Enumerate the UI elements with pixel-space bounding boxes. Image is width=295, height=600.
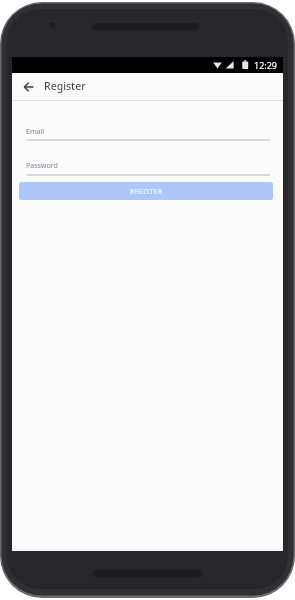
staticText: Password <box>26 160 58 170</box>
button[interactable] <box>15 73 43 100</box>
staticText: Email <box>26 126 44 136</box>
staticText: REGISTER <box>130 187 163 196</box>
button[interactable]: REGISTER <box>19 182 273 200</box>
button[interactable]: Password <box>27 159 270 176</box>
button[interactable]: Email <box>27 125 270 141</box>
staticText: 12:29 <box>254 59 278 71</box>
staticText: Register <box>44 79 86 93</box>
